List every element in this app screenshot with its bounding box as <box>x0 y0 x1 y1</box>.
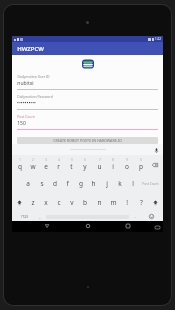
button[interactable]: g <box>74 179 87 188</box>
button[interactable]: Shift <box>148 200 162 205</box>
staticText: k <box>118 179 122 188</box>
staticText: 6 <box>84 158 86 162</box>
button[interactable]: Recents <box>123 221 133 231</box>
staticText: •••••••••• <box>17 100 36 107</box>
staticText: 150 <box>17 120 26 127</box>
staticText: ! <box>126 198 128 207</box>
staticText: s <box>40 179 44 188</box>
button[interactable]: f <box>61 179 74 188</box>
staticText: b <box>83 198 87 207</box>
button[interactable]: h <box>87 179 100 188</box>
staticText: o <box>125 162 129 171</box>
button[interactable]: Dailymotion Password <box>17 94 158 110</box>
staticText: 5 <box>71 158 73 162</box>
staticText: HWZPCW <box>17 45 44 53</box>
button[interactable]: 1 <box>13 158 26 171</box>
staticText: 9 <box>126 158 128 162</box>
staticText: t <box>70 162 73 171</box>
staticText: Dailymotion User ID <box>17 74 50 79</box>
button[interactable]: CREATE ROBOT POSTS IN HARDWARE.IO <box>17 137 158 144</box>
button[interactable]: Voice input <box>153 147 159 153</box>
button[interactable]: 6 <box>78 158 92 171</box>
button[interactable]: 8 <box>106 158 120 171</box>
button[interactable]: 4 <box>52 158 65 171</box>
staticText: i <box>112 162 114 171</box>
button[interactable]: ! <box>120 198 134 207</box>
button[interactable]: k <box>113 179 126 188</box>
button[interactable]: 5 <box>65 158 78 171</box>
staticText: 3 <box>45 158 47 162</box>
button[interactable]: HWZPCW <box>12 42 163 55</box>
staticText: Post Count <box>142 182 159 186</box>
staticText: 0 <box>140 158 142 162</box>
button[interactable]: Emoji <box>141 214 161 219</box>
staticText: g <box>79 179 83 188</box>
button[interactable]: x <box>39 198 52 207</box>
staticText: CREATE ROBOT POSTS IN HARDWARE.IO <box>53 138 122 143</box>
staticText: q <box>18 162 22 171</box>
staticText: v <box>70 198 74 207</box>
button[interactable]: c <box>52 198 65 207</box>
button[interactable]: Shift <box>13 200 26 205</box>
staticText: x <box>44 198 48 207</box>
button[interactable]: 3 <box>39 158 52 171</box>
staticText: 7 <box>99 158 101 162</box>
button[interactable]: d <box>48 179 61 188</box>
button[interactable]: Backspace <box>148 162 162 168</box>
staticText: p <box>139 162 143 171</box>
button[interactable]: ?123 <box>14 215 34 219</box>
staticText: 8 <box>112 158 114 162</box>
button[interactable]: 2 <box>26 158 39 171</box>
button[interactable]: 9 <box>120 158 134 171</box>
staticText: d <box>53 179 57 188</box>
staticText: f <box>66 179 69 188</box>
button[interactable]: Post Count <box>17 114 158 130</box>
button[interactable]: , <box>34 214 46 219</box>
staticText: h <box>91 179 96 188</box>
button[interactable]: Home <box>83 221 93 231</box>
staticText: r <box>57 162 60 171</box>
staticText: ? <box>140 198 143 207</box>
staticText: j <box>106 179 108 188</box>
button[interactable]: 7 <box>92 158 106 171</box>
button[interactable]: Post Count <box>139 182 162 186</box>
button[interactable]: j <box>100 179 113 188</box>
staticText: 1 <box>19 158 21 162</box>
staticText: Dailymotion Password <box>17 94 53 99</box>
button[interactable]: v <box>65 198 78 207</box>
button[interactable]: l <box>126 179 139 188</box>
staticText: 1:22 <box>155 37 161 41</box>
staticText: a <box>26 179 30 188</box>
staticText: e <box>44 162 48 171</box>
staticText: 4 <box>58 158 60 162</box>
button[interactable]: b <box>78 198 92 207</box>
staticText: z <box>31 198 35 207</box>
button[interactable]: 0 <box>134 158 148 171</box>
button[interactable]: Voice input <box>12 144 163 155</box>
staticText: , <box>39 214 41 219</box>
staticText: 2 <box>32 158 34 162</box>
staticText: Post Count <box>17 114 35 119</box>
staticText: nubitxi <box>17 80 34 87</box>
button[interactable]: Dailymotion User ID <box>17 74 158 90</box>
staticText: w <box>30 162 36 171</box>
staticText: l <box>132 179 134 188</box>
button[interactable]: n <box>92 198 106 207</box>
staticText: n <box>97 198 102 207</box>
staticText: ?123 <box>21 215 28 219</box>
staticText: . <box>134 214 136 219</box>
button[interactable]: Back <box>42 221 52 231</box>
staticText: y <box>83 162 87 171</box>
staticText: c <box>57 198 61 207</box>
button[interactable]: z <box>26 198 39 207</box>
button[interactable]: m <box>106 198 120 207</box>
button[interactable]: a <box>21 179 35 188</box>
staticText: m <box>110 198 117 207</box>
button[interactable]: s <box>35 179 48 188</box>
button[interactable]: ? <box>134 198 148 207</box>
button[interactable]: Switch keyboard <box>154 224 160 230</box>
staticText: u <box>97 162 102 171</box>
